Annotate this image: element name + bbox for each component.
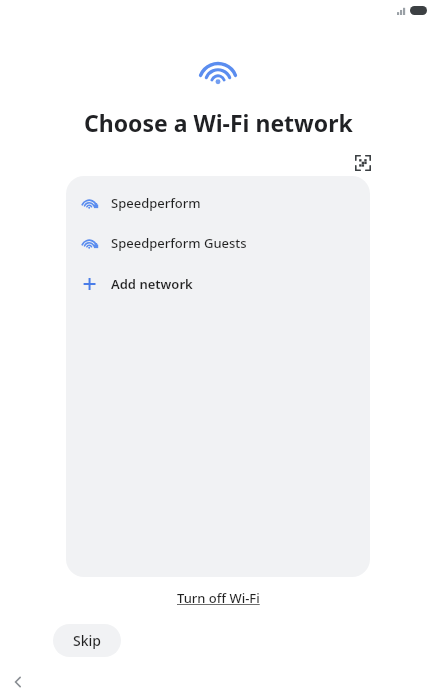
staticText: Skip (73, 631, 101, 650)
button[interactable]: Turn off Wi-Fi (171, 586, 266, 610)
button[interactable]: Add network (66, 263, 370, 305)
button[interactable]: Scan QR code (349, 149, 377, 177)
staticText: Speedperform Guests (111, 234, 247, 252)
staticText: Add network (111, 275, 193, 293)
button[interactable]: Speedperform Guests (66, 223, 370, 263)
staticText: Speedperform (111, 194, 201, 212)
staticText: Turn off Wi-Fi (177, 589, 260, 607)
button[interactable]: Speedperform (66, 183, 370, 223)
staticText: Choose a Wi-Fi network (84, 107, 353, 138)
button[interactable]: Skip (53, 624, 121, 657)
button[interactable]: Back (4, 668, 32, 696)
